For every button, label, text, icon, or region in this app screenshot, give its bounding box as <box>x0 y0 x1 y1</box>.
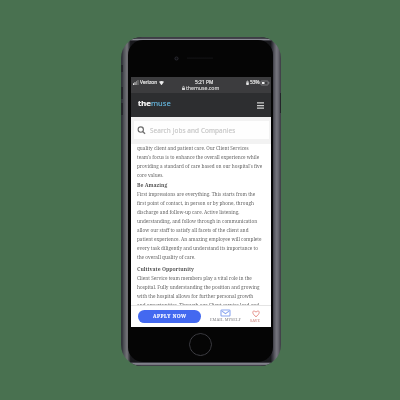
staticText: Cultivate Opportunity <box>137 266 194 273</box>
staticText: Be Amazing <box>137 182 168 189</box>
staticText: 5:21 PM <box>195 79 214 86</box>
staticText: First impressions are everything. This s… <box>137 191 263 260</box>
staticText: muse <box>151 98 171 108</box>
staticText: Search Jobs and Companies <box>150 126 236 135</box>
button[interactable]: Menu <box>255 100 266 111</box>
staticText: Verizon <box>140 79 158 86</box>
staticText: 53% <box>250 79 260 86</box>
button[interactable]: SAVE <box>250 310 261 323</box>
staticText: APPLY NOW <box>153 313 187 320</box>
button[interactable]: EMAIL MYSELF <box>210 310 241 322</box>
button[interactable]: the <box>138 98 171 108</box>
button[interactable]: APPLY NOW <box>138 310 201 323</box>
staticText: SAVE <box>250 318 261 323</box>
staticText: EMAIL MYSELF <box>210 317 241 322</box>
staticText: quality client and patient care. Our Cli… <box>137 145 263 178</box>
button[interactable]: Search Jobs and Companies <box>134 121 269 139</box>
staticText: the <box>138 98 151 108</box>
button[interactable]: themuse.com <box>131 84 271 91</box>
staticText: themuse.com <box>186 84 220 91</box>
staticText: Client Service team members play a vital… <box>137 275 263 308</box>
